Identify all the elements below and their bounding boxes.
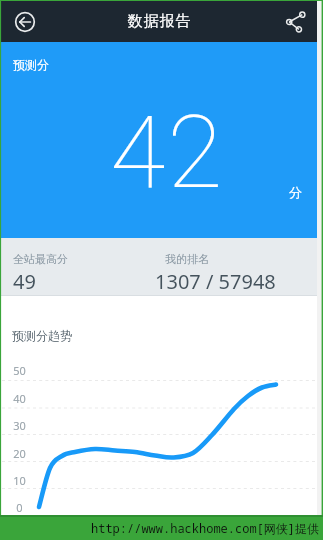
staticText: 49 — [13, 268, 36, 295]
staticText: 预测分趋势 — [12, 328, 72, 343]
staticText: 数据报告 — [127, 12, 191, 31]
staticText: 预测分 — [13, 57, 49, 72]
staticText: 40 — [13, 391, 26, 406]
staticText: 0 — [16, 500, 23, 515]
staticText: 50 — [13, 363, 26, 378]
staticText: 全站最高分 — [13, 252, 68, 266]
staticText: 分 — [289, 184, 302, 200]
staticText: 20 — [13, 446, 26, 461]
button[interactable] — [283, 10, 307, 34]
button[interactable] — [14, 11, 36, 33]
button[interactable]: http://www.hackhome.com[网侠]提供 — [0, 515, 323, 540]
staticText: 我的排名 — [165, 252, 209, 266]
staticText: http://www.hackhome.com[网侠]提供 — [91, 520, 320, 536]
staticText: 42 — [110, 93, 225, 211]
staticText: 10 — [13, 473, 26, 488]
staticText: 1307 / 57948 — [155, 268, 276, 295]
staticText: 30 — [13, 418, 26, 433]
